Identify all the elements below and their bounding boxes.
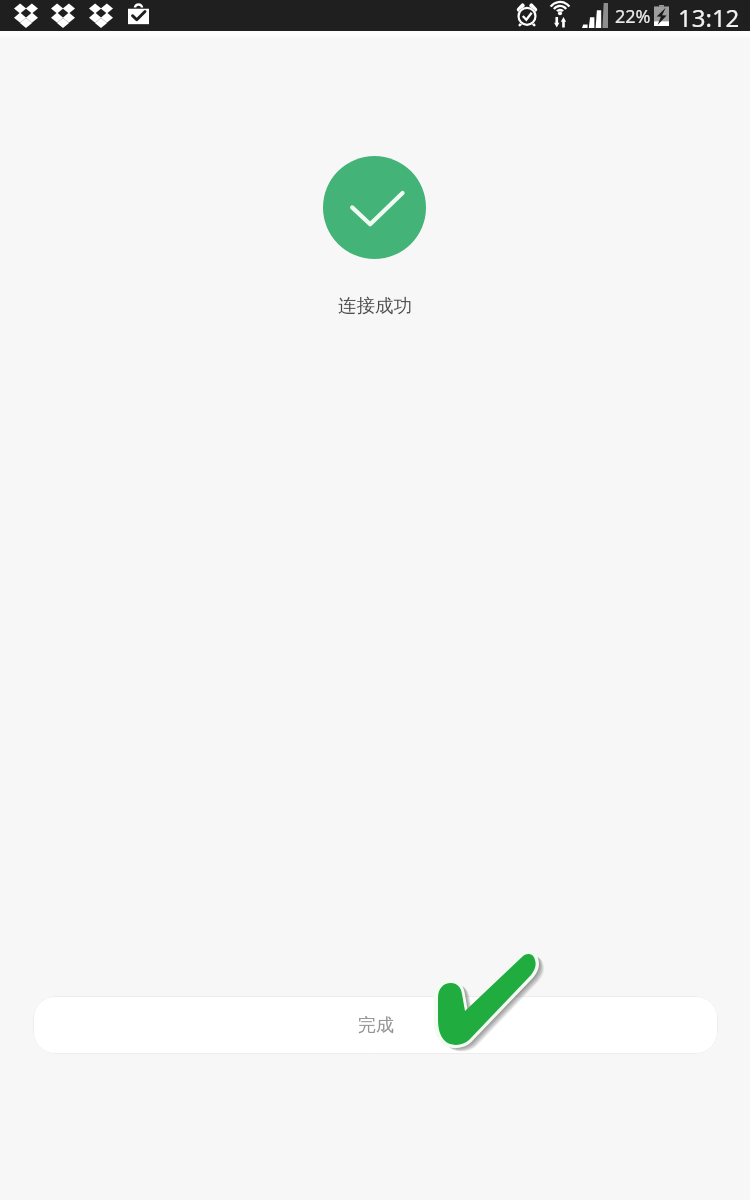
- other: 连接成功: [323, 156, 426, 259]
- staticText: 完成: [358, 1014, 394, 1037]
- staticText: 13:12: [678, 1, 740, 32]
- other: Mobile signal: [582, 3, 608, 28]
- staticText: 连接成功: [338, 294, 412, 317]
- other: Alarm set: [516, 4, 538, 26]
- other: Dropbox notification: [89, 3, 113, 28]
- other: Work profile: [126, 3, 151, 26]
- other: Dropbox notification: [51, 3, 75, 28]
- other: Dropbox notification: [14, 3, 38, 28]
- other: Wi-Fi connected: [548, 2, 572, 28]
- other: 完成: [425, 940, 555, 1065]
- staticText: 22%: [615, 4, 651, 29]
- other: Battery charging 22 percent: [654, 5, 669, 26]
- button[interactable]: 完成: [33, 996, 718, 1054]
